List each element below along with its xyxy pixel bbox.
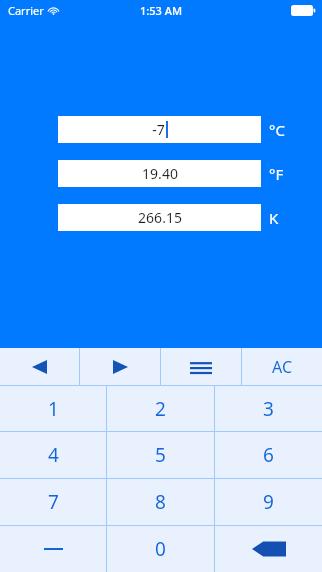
button[interactable]: 3 [215,386,322,431]
button[interactable]: Backspace [215,526,322,572]
button[interactable]: 19.40 [58,160,261,187]
staticText: 6 [263,442,274,468]
staticText: 266.15 [138,208,182,227]
button[interactable]: AC [242,348,322,385]
button[interactable]: 9 [215,479,322,525]
staticText: 5 [155,442,166,468]
button[interactable]: 266.15 [58,204,261,231]
button[interactable]: Move left [0,348,79,385]
button[interactable]: 6 [215,432,322,478]
button[interactable]: Menu [161,348,241,385]
staticText: °F [269,164,284,184]
button[interactable]: -7 [58,116,261,143]
staticText: 1:53 AM [140,3,183,18]
staticText: 2 [155,396,166,422]
button[interactable]: Move right [80,348,160,385]
button[interactable]: 0 [107,526,214,572]
staticText: 8 [155,489,166,515]
staticText: °C [269,120,285,140]
button[interactable]: 1 [0,386,106,431]
staticText: 3 [263,396,274,422]
button[interactable]: 4 [0,432,106,478]
staticText: 9 [263,489,274,515]
button[interactable]: 7 [0,479,106,525]
button[interactable]: 5 [107,432,214,478]
staticText: AC [272,356,293,378]
staticText: Carrier [8,3,44,18]
button[interactable]: 8 [107,479,214,525]
staticText: -7 [152,120,165,139]
button[interactable]: 2 [107,386,214,431]
staticText: 4 [48,442,59,468]
button[interactable]: Minus [0,526,106,572]
staticText: 7 [48,489,59,515]
staticText: 1 [48,396,59,422]
staticText: 19.40 [142,164,178,183]
staticText: 0 [155,536,166,562]
staticText: K [269,208,279,228]
